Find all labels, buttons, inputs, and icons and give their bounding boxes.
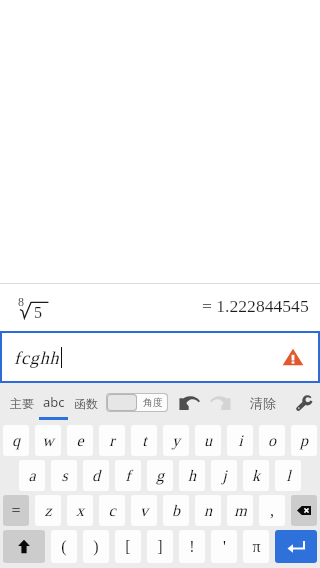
button[interactable]: !	[179, 530, 205, 563]
button[interactable]: a	[19, 460, 45, 491]
button[interactable]: u	[195, 425, 221, 456]
staticText: = 1.222844545	[202, 296, 309, 315]
button[interactable]: l	[275, 460, 301, 491]
button[interactable]: '	[211, 530, 237, 563]
button[interactable]: ]	[147, 530, 173, 563]
staticText: x	[76, 502, 84, 520]
button[interactable]: v	[131, 495, 157, 526]
button[interactable]: r	[99, 425, 125, 456]
staticText: n	[204, 502, 212, 520]
button[interactable]: d	[83, 460, 109, 491]
staticText: i	[238, 432, 243, 450]
button[interactable]: f	[115, 460, 141, 491]
button[interactable]: ,	[259, 495, 285, 526]
staticText: [	[125, 538, 131, 556]
button[interactable]: m	[227, 495, 253, 526]
button[interactable]: y	[163, 425, 189, 456]
button[interactable]: x	[67, 495, 93, 526]
button[interactable]: 函数	[70, 383, 102, 423]
staticText: 8	[18, 295, 24, 308]
button[interactable]: w	[35, 425, 61, 456]
staticText: )	[93, 538, 99, 556]
staticText: !	[189, 538, 195, 556]
staticText: c	[108, 502, 116, 520]
staticText: u	[204, 432, 212, 450]
button[interactable]: n	[195, 495, 221, 526]
button[interactable]: [	[115, 530, 141, 563]
button[interactable]: 清除	[243, 383, 283, 423]
staticText: p	[300, 432, 308, 450]
staticText: g	[156, 467, 164, 485]
button[interactable]: z	[35, 495, 61, 526]
staticText: s	[61, 467, 68, 485]
staticText: f	[125, 467, 131, 485]
staticText: 主要	[10, 396, 34, 411]
staticText: j	[222, 467, 227, 485]
staticText: v	[140, 502, 148, 520]
staticText: r	[109, 432, 115, 450]
button[interactable]: Backspace	[291, 495, 317, 526]
button[interactable]: p	[291, 425, 317, 456]
button[interactable]: =	[3, 495, 29, 526]
staticText: abc	[43, 393, 65, 411]
staticText: h	[188, 467, 196, 485]
staticText: π	[252, 538, 261, 556]
staticText: y	[172, 432, 180, 450]
button[interactable]: )	[83, 530, 109, 563]
button[interactable]: Settings	[292, 391, 316, 415]
staticText: k	[252, 467, 260, 485]
staticText: b	[172, 502, 180, 520]
button[interactable]: i	[227, 425, 253, 456]
staticText: =	[11, 502, 21, 520]
staticText: d	[92, 467, 100, 485]
staticText: (	[61, 538, 67, 556]
button[interactable]: s	[51, 460, 77, 491]
staticText: m	[234, 502, 247, 520]
staticText: o	[268, 432, 276, 450]
button[interactable]: b	[163, 495, 189, 526]
staticText: 5	[34, 304, 42, 322]
staticText: t	[142, 432, 147, 450]
button[interactable]: c	[99, 495, 125, 526]
button[interactable]: o	[259, 425, 285, 456]
button[interactable]: Undo	[172, 390, 206, 416]
button[interactable]: abc	[38, 383, 69, 423]
staticText: w	[42, 432, 54, 450]
button[interactable]: h	[179, 460, 205, 491]
button[interactable]: fcghh	[2, 333, 318, 381]
button[interactable]: π	[243, 530, 269, 563]
button[interactable]: Shift	[3, 530, 45, 563]
staticText: e	[76, 432, 84, 450]
staticText: 清除	[250, 395, 276, 411]
button[interactable]: Enter	[275, 530, 317, 563]
button[interactable]: t	[131, 425, 157, 456]
staticText: '	[223, 538, 226, 556]
staticText: fcghh	[14, 348, 60, 368]
button[interactable]: k	[243, 460, 269, 491]
other: Warning	[282, 346, 304, 368]
button[interactable]: q	[3, 425, 29, 456]
button[interactable]: (	[51, 530, 77, 563]
button[interactable]: e	[67, 425, 93, 456]
staticText: 角度	[143, 396, 163, 409]
staticText: 函数	[74, 396, 98, 411]
staticText: l	[286, 467, 291, 485]
button[interactable]: Redo	[203, 390, 237, 416]
button[interactable]: g	[147, 460, 173, 491]
button[interactable]: 主要	[4, 383, 40, 423]
button[interactable]: 角度	[107, 394, 167, 411]
staticText: z	[44, 502, 52, 520]
button[interactable]: j	[211, 460, 237, 491]
staticText: ]	[157, 538, 163, 556]
staticText: a	[28, 467, 36, 485]
staticText: ,	[270, 502, 274, 520]
staticText: q	[12, 432, 20, 450]
